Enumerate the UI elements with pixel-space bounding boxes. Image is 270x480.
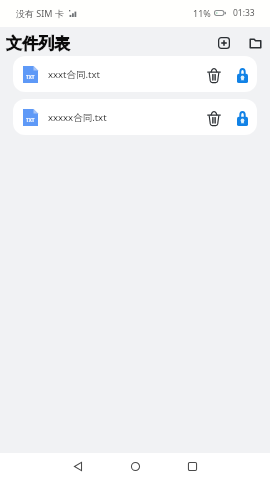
staticText: 11% [193,7,211,19]
button[interactable]: Delete [201,62,225,86]
staticText: 01:33 [233,7,255,19]
button[interactable]: TXT [13,56,257,92]
staticText: xxxt合同.txt [48,68,201,81]
button[interactable]: Lock [229,62,253,86]
button[interactable]: Recent apps [174,453,210,480]
staticText: xxxxx合同.txt [48,111,201,124]
button[interactable]: Home [117,453,153,480]
button[interactable]: Open folder [244,32,266,54]
staticText: 文件列表 [6,34,70,54]
button[interactable]: TXT [13,99,257,135]
button[interactable]: Delete [201,105,225,129]
staticText: TXT [26,117,35,123]
button[interactable]: Add file [213,32,235,54]
staticText: TXT [26,74,35,80]
button[interactable]: Lock [229,105,253,129]
button[interactable]: Back [60,453,96,480]
staticText: 没有 SIM 卡 [16,7,64,19]
